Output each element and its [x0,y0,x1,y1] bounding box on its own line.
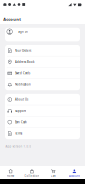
staticText: Account [69,174,80,178]
button[interactable]: Home [0,169,21,178]
staticText: Account [3,16,21,22]
button[interactable]: Cart [42,169,64,178]
button[interactable]: Support [5,105,80,116]
button[interactable]: Your Orders [5,45,80,56]
button[interactable]: Saved Cards [5,68,80,79]
staticText: Support [15,109,26,113]
staticText: Home [7,174,15,178]
staticText: Address Book [15,60,34,64]
button[interactable]: Account [64,169,85,178]
staticText: Notification [15,83,31,86]
button[interactable]: Terms [5,128,80,139]
staticText: Sign In [18,30,28,33]
button[interactable]: Earn Cash [5,116,80,128]
staticText: Cart [51,174,56,178]
button[interactable]: Address Book [5,56,80,68]
staticText: App version 1.0.0 [5,145,31,148]
button[interactable]: Collection [21,169,42,178]
staticText: Collection [24,174,39,178]
staticText: Earn Cash [15,120,27,124]
staticText: Terms [15,132,22,135]
button[interactable]: Notification [5,79,80,90]
button[interactable]: Sign In [5,28,80,41]
staticText: Saved Cards [15,71,30,75]
staticText: About Us [15,98,28,101]
staticText: Your Orders [15,49,31,52]
button[interactable]: About Us [5,94,80,105]
